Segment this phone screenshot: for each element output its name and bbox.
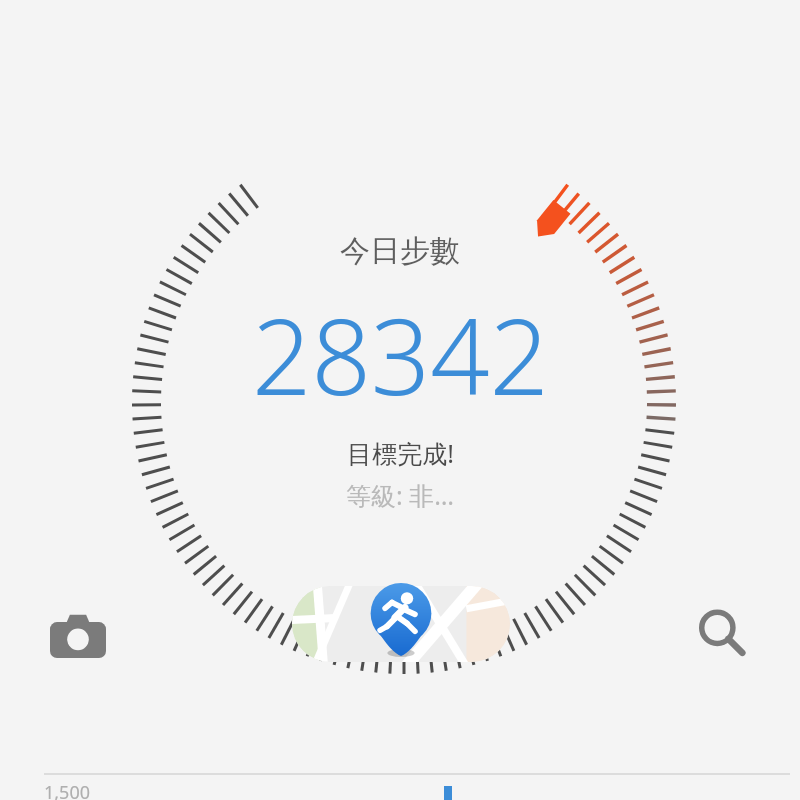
button[interactable]: Route map: [292, 586, 510, 662]
staticText: 等級: 非…: [346, 478, 454, 512]
staticText: 1,500: [44, 780, 91, 800]
staticText: 目標完成!: [347, 436, 454, 470]
button[interactable]: Camera: [38, 595, 118, 675]
button[interactable]: Search: [682, 593, 762, 673]
staticText: 28342: [252, 284, 549, 426]
staticText: 今日步數: [340, 232, 460, 270]
